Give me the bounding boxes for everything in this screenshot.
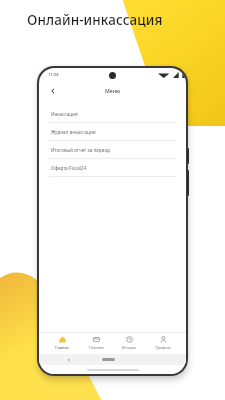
staticText: Инкассация: [51, 111, 78, 117]
staticText: История: [122, 345, 136, 350]
staticText: Главное: [55, 345, 69, 350]
staticText: Платежи: [89, 345, 104, 350]
staticText: Журнал инкассации: [51, 129, 96, 135]
staticText: Меню: [105, 87, 121, 94]
staticText: 11:04: [48, 72, 59, 78]
button[interactable]: Оферта Fiscal24: [39, 159, 186, 177]
button[interactable]: Системная кнопка назад: [65, 356, 73, 364]
staticText: Онлайн-инкассация: [27, 11, 163, 29]
button[interactable]: Платежи: [81, 332, 111, 354]
button[interactable]: История: [114, 332, 144, 354]
button[interactable]: Профиль: [148, 332, 178, 354]
staticText: Итоговый отчет за период: [51, 147, 110, 153]
button[interactable]: Назад: [46, 84, 60, 98]
button[interactable]: Итоговый отчет за период: [39, 141, 186, 159]
staticText: Оферта Fiscal24: [51, 165, 87, 171]
button[interactable]: Журнал инкассации: [39, 123, 186, 141]
button[interactable]: Главное: [47, 332, 77, 354]
staticText: Профиль: [155, 345, 171, 350]
button[interactable]: Инкассация: [39, 105, 186, 123]
